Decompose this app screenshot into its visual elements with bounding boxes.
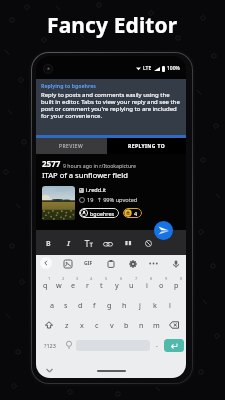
button[interactable]: bgoehres	[80, 208, 115, 218]
button[interactable]: b	[119, 315, 134, 335]
button[interactable]: PREVIEW	[36, 138, 107, 154]
button[interactable]: 6	[109, 275, 124, 295]
button[interactable]: Emoji	[62, 335, 76, 355]
staticText: q	[43, 280, 48, 290]
button[interactable]: g	[102, 295, 117, 315]
button[interactable]: z	[59, 315, 74, 335]
staticText: a	[50, 300, 55, 310]
staticText: 1	[48, 276, 51, 281]
button[interactable]: Hide keyboard	[45, 366, 54, 375]
staticText: e	[71, 280, 76, 290]
button[interactable]: Shift	[38, 315, 59, 335]
staticText: ?123	[44, 342, 56, 349]
staticText: u	[129, 280, 134, 290]
staticText: PREVIEW	[59, 143, 84, 150]
staticText: 19	[87, 196, 94, 204]
button[interactable]: 8	[139, 275, 154, 295]
staticText: x	[80, 320, 84, 330]
button[interactable]: s	[59, 295, 73, 315]
staticText: 0	[180, 276, 183, 281]
staticText: REPLYING TO	[128, 143, 166, 150]
staticText: n	[139, 320, 144, 330]
staticText: 2	[62, 276, 65, 281]
button[interactable]: l	[162, 295, 177, 315]
button[interactable]: k	[147, 295, 162, 315]
staticText: 4	[90, 276, 93, 281]
button[interactable]: 4	[124, 208, 138, 218]
staticText: r	[86, 280, 89, 290]
staticText: ↑ 99% upvoted	[97, 196, 138, 204]
button[interactable]: Backspace	[164, 315, 184, 335]
staticText: i	[146, 280, 148, 290]
button[interactable]: d	[73, 295, 87, 315]
staticText: w	[56, 280, 62, 290]
button[interactable]: v	[104, 315, 119, 335]
staticText: B	[46, 239, 51, 249]
button[interactable]: Back	[40, 257, 52, 269]
button[interactable]: Voice input	[169, 257, 182, 270]
staticText: v	[110, 320, 114, 330]
staticText: bgoehres	[90, 210, 115, 217]
staticText: f	[93, 300, 96, 310]
button[interactable]: m	[149, 315, 164, 335]
button[interactable]: GIF	[82, 257, 95, 270]
staticText: 7	[135, 276, 138, 281]
staticText: 100%	[167, 65, 180, 72]
button[interactable]: Strikethrough	[78, 231, 98, 256]
button[interactable]: More	[147, 257, 160, 270]
button[interactable]: 2	[52, 275, 66, 295]
staticText: d	[78, 300, 83, 310]
button[interactable]: 7	[124, 275, 139, 295]
button[interactable]: Quote	[118, 231, 138, 256]
button[interactable]: REPLYING TO	[107, 138, 186, 154]
button[interactable]: Clipboard	[104, 257, 117, 270]
button[interactable]: n	[134, 315, 149, 335]
button[interactable]: Send	[154, 221, 173, 240]
staticText: g	[107, 300, 112, 310]
button[interactable]: 9	[154, 275, 169, 295]
button[interactable]: h	[117, 295, 132, 315]
button[interactable]: a	[45, 295, 59, 315]
button[interactable]: Link	[98, 231, 118, 256]
staticText: z	[65, 320, 69, 330]
staticText: I	[67, 239, 70, 249]
staticText: 6	[120, 276, 123, 281]
staticText: c	[95, 320, 99, 330]
staticText: h	[122, 300, 127, 310]
staticText: 4	[134, 210, 138, 217]
button[interactable]: 3	[66, 275, 80, 295]
staticText: 3	[76, 276, 79, 281]
button[interactable]: j	[132, 295, 147, 315]
button[interactable]: ?123	[38, 335, 62, 355]
staticText: .	[156, 340, 158, 350]
staticText: k	[153, 300, 157, 310]
button[interactable]: Italic	[58, 231, 78, 256]
staticText: 8	[150, 276, 153, 281]
button[interactable]: 5	[94, 275, 109, 295]
button[interactable]: B	[38, 231, 58, 256]
staticText: 9	[165, 276, 168, 281]
button[interactable]: Settings	[126, 257, 139, 270]
staticText: t	[100, 280, 103, 290]
button[interactable]: Spoiler	[138, 231, 158, 256]
staticText: o	[159, 280, 164, 290]
staticText: b	[124, 320, 129, 330]
button[interactable]: Enter	[164, 339, 184, 352]
staticText: LTE	[143, 65, 152, 72]
button[interactable]: Stickers	[61, 257, 74, 270]
button[interactable]: 4	[80, 275, 94, 295]
staticText: Replying to bgoehres	[41, 82, 96, 89]
button[interactable]: 1	[38, 275, 52, 295]
staticText: 2577	[42, 158, 61, 169]
button[interactable]: f	[87, 295, 102, 315]
staticText: s	[64, 300, 68, 310]
staticText: p	[174, 280, 179, 290]
button[interactable]: c	[89, 315, 104, 335]
button[interactable]: 0	[169, 275, 184, 295]
staticText: y	[115, 280, 119, 290]
staticText: ITAP of a sunflower field	[42, 170, 128, 180]
button[interactable]: .	[150, 335, 164, 355]
button[interactable]: x	[74, 315, 89, 335]
staticText: 5	[105, 276, 108, 281]
